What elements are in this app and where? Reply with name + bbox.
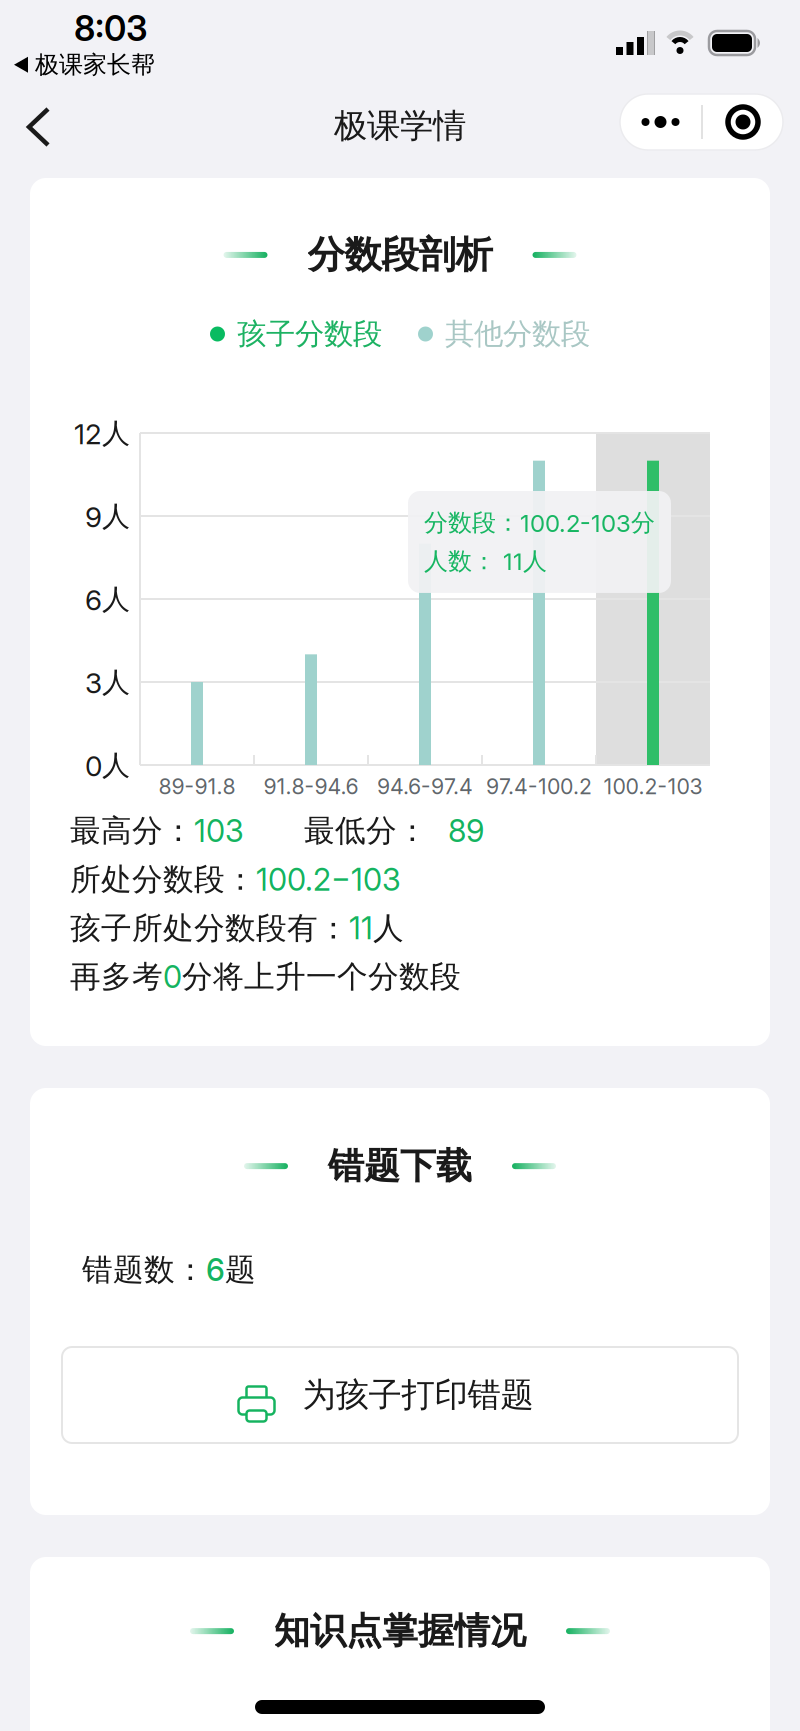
staticText: 为孩子打印错题 <box>302 1374 533 1415</box>
staticText: 6 <box>206 1252 225 1288</box>
staticText: 103 <box>194 813 244 849</box>
staticText: 孩子分数段 <box>237 316 382 352</box>
staticText: 孩子所处分数段有： <box>70 909 349 947</box>
staticText: 0 <box>163 959 182 995</box>
staticText: 97.4-100.2 <box>486 774 592 799</box>
staticText: 89 <box>440 813 484 849</box>
staticText: 分数段剖析 <box>307 232 492 278</box>
staticText: 人 <box>373 909 404 947</box>
staticText: 知识点掌握情况 <box>274 1609 526 1653</box>
staticText: 最高分： <box>70 812 194 850</box>
staticText: 9人 <box>85 499 130 534</box>
staticText: 8:03 <box>74 8 148 49</box>
staticText: 0人 <box>85 748 130 783</box>
staticText: 89-91.8 <box>158 774 235 799</box>
staticText: 题 <box>225 1251 256 1289</box>
staticText: 3人 <box>85 665 130 700</box>
staticText: 错题下载 <box>328 1144 472 1188</box>
staticText: 94.6-97.4 <box>377 774 473 799</box>
staticText: 12人 <box>74 416 130 451</box>
button[interactable]: More <box>620 94 701 150</box>
staticText: 所处分数段： <box>70 861 256 898</box>
staticText: 极课学情 <box>334 105 466 146</box>
staticText: 6人 <box>85 582 130 617</box>
button[interactable]: Back <box>0 82 64 172</box>
staticText: 人数： 11人 <box>424 546 547 576</box>
button[interactable]: 为孩子打印错题 <box>62 1347 738 1443</box>
staticText: 100.2-103 <box>603 774 702 799</box>
staticText: 再多考 <box>70 958 163 996</box>
staticText: 其他分数段 <box>445 316 590 352</box>
staticText: 错题数： <box>82 1251 206 1289</box>
staticText: 分将上升一个分数段 <box>182 958 461 996</box>
staticText: 100.2−103 <box>256 861 401 898</box>
staticText: 11 <box>349 910 373 946</box>
staticText: 91.8-94.6 <box>263 774 358 799</box>
staticText: 分数段：100.2-103分 <box>424 508 655 537</box>
staticText: 极课家长帮 <box>35 50 155 79</box>
button[interactable]: Close <box>702 94 784 150</box>
staticText: 最低分： <box>304 812 428 850</box>
